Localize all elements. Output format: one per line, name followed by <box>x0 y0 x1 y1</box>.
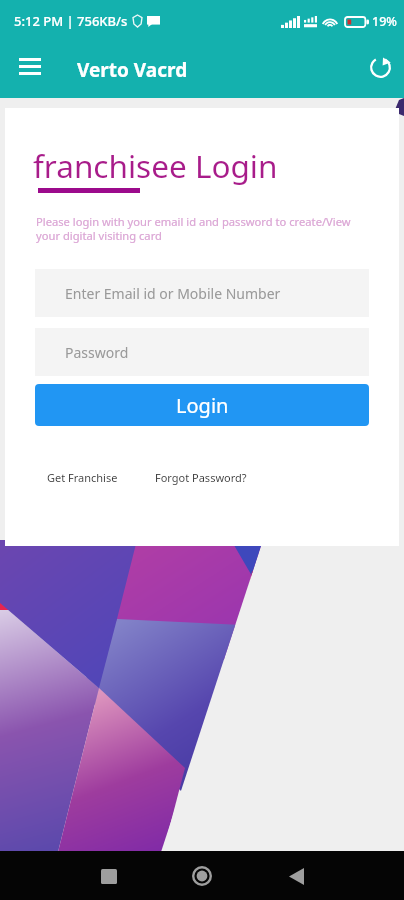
button[interactable]: Home <box>180 854 224 898</box>
staticText: Enter Email id or Mobile Number <box>65 284 281 303</box>
button[interactable]: Password <box>35 328 369 376</box>
button[interactable]: Get Franchise <box>43 467 122 488</box>
button[interactable]: Back <box>274 854 318 898</box>
staticText: Please login with your email id and pass… <box>36 214 354 243</box>
button[interactable]: Refresh <box>359 46 401 88</box>
staticText: 19% <box>372 13 397 30</box>
staticText: Login <box>176 392 229 419</box>
staticText: Password <box>65 343 129 362</box>
button[interactable]: Enter Email id or Mobile Number <box>35 269 369 317</box>
staticText: franchisee Login <box>33 144 278 187</box>
staticText: Verto Vacrd <box>77 57 188 83</box>
staticText: Get Franchise <box>47 470 118 485</box>
button[interactable]: Login <box>35 384 369 426</box>
button[interactable]: Forgot Password? <box>151 467 251 488</box>
staticText: Forgot Password? <box>155 470 247 485</box>
staticText: 5:12 PM | 756KB/s <box>14 12 128 30</box>
button[interactable]: Menu <box>9 45 51 87</box>
button[interactable]: Recents <box>87 854 131 898</box>
